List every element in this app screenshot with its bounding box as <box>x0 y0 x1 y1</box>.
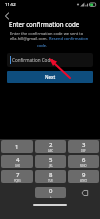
staticText: 4 <box>16 156 20 164</box>
staticText: ABC <box>48 149 54 153</box>
staticText: Resend confirmation <box>49 36 89 41</box>
staticText: 8 <box>49 171 53 179</box>
staticText: 5 <box>49 156 53 164</box>
button[interactable]: 7 <box>1 170 33 183</box>
staticText: Enter the confirmation code we sent to <box>10 31 84 36</box>
staticText: 1 <box>15 143 19 151</box>
button[interactable]: 9 <box>68 170 99 183</box>
staticText: 7 <box>16 171 20 179</box>
button[interactable]: 8 <box>35 170 66 183</box>
button[interactable]: 2 <box>35 140 66 153</box>
staticText: + <box>50 195 52 198</box>
staticText: TUV <box>48 179 53 183</box>
staticText: code. <box>37 43 48 48</box>
staticText: Confirmation Code <box>12 57 53 63</box>
button[interactable]: Confirmation Code <box>7 53 93 67</box>
staticText: WXYZ <box>80 179 88 183</box>
button[interactable]: 4 <box>1 155 33 168</box>
staticText: 11:52 <box>5 2 16 8</box>
button[interactable]: Next <box>7 71 93 83</box>
staticText: JKL <box>49 164 53 168</box>
staticText: 6 <box>82 156 86 164</box>
staticText: ella.hill@gmail.com. <box>10 36 49 41</box>
staticText: Enter confirmation code <box>9 20 80 28</box>
button[interactable]: 0 <box>35 187 66 198</box>
button[interactable]: 5 <box>35 155 66 168</box>
staticText: 9 <box>82 171 86 179</box>
staticText: MNO <box>80 164 87 168</box>
staticText: DEF <box>81 149 86 153</box>
staticText: 3 <box>82 141 86 149</box>
staticText: GHI <box>15 164 20 168</box>
button[interactable]: Backspace <box>68 187 99 198</box>
staticText: 0 <box>49 187 53 195</box>
staticText: Next <box>45 74 56 80</box>
button[interactable]: 6 <box>68 155 99 168</box>
button[interactable]: 3 <box>68 140 99 153</box>
button[interactable]: 1 <box>1 140 33 153</box>
staticText: 2 <box>49 141 53 149</box>
button[interactable]: Back <box>0 9 14 22</box>
staticText: PQRS <box>14 179 21 183</box>
